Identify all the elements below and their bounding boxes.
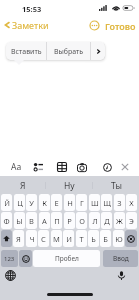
button[interactable]: Markup <box>98 158 116 176</box>
button[interactable]: А <box>39 212 50 229</box>
staticText: З <box>117 198 122 208</box>
button[interactable]: Б <box>100 230 111 247</box>
button[interactable]: Щ <box>101 194 112 211</box>
staticText: О <box>79 216 85 226</box>
staticText: Ц <box>17 198 23 208</box>
button[interactable]: У <box>26 194 37 211</box>
staticText: Ф <box>3 216 10 226</box>
staticText: Т <box>79 234 84 244</box>
button[interactable]: Г <box>76 194 87 211</box>
button[interactable]: Ц <box>14 194 25 211</box>
staticText: Aa <box>11 161 22 173</box>
button[interactable]: Д <box>101 212 112 229</box>
staticText: Р <box>67 216 72 226</box>
staticText: Ш <box>91 198 99 208</box>
button[interactable]: Ы <box>14 212 25 229</box>
button[interactable]: И <box>63 230 74 247</box>
staticText: 15:53 <box>22 4 42 14</box>
button[interactable]: Ю <box>113 230 124 247</box>
button[interactable]: Э <box>126 212 137 229</box>
button[interactable]: С <box>38 230 49 247</box>
button[interactable]: Ш <box>89 194 100 211</box>
staticText: Д <box>104 216 110 226</box>
staticText: Ну <box>64 180 75 192</box>
staticText: Б <box>103 234 108 244</box>
button[interactable]: Готово <box>105 20 136 32</box>
staticText: Ввод <box>113 254 129 263</box>
button[interactable]: Е <box>51 194 62 211</box>
button[interactable]: З <box>114 194 125 211</box>
staticText: Е <box>54 198 59 208</box>
button[interactable]: Numbers <box>1 250 18 267</box>
button[interactable]: Backspace <box>125 230 137 247</box>
button[interactable]: М <box>51 230 62 247</box>
button[interactable]: Й <box>1 194 12 211</box>
button[interactable]: П <box>51 212 62 229</box>
staticText: Н <box>67 198 73 208</box>
staticText: И <box>66 234 72 244</box>
staticText: Ж <box>116 216 123 226</box>
button[interactable]: Camera <box>73 158 91 176</box>
button[interactable]: Ты <box>93 176 139 194</box>
staticText: Я <box>16 234 21 244</box>
staticText: Ты <box>111 180 122 192</box>
button[interactable]: Checklist <box>29 158 47 176</box>
button[interactable]: Т <box>76 230 87 247</box>
staticText: Ч <box>29 234 35 244</box>
staticText: Пробел <box>55 254 79 263</box>
button[interactable]: Х <box>126 194 137 211</box>
button[interactable]: Р <box>64 212 75 229</box>
button[interactable]: О <box>76 212 87 229</box>
staticText: Х <box>129 198 134 208</box>
button[interactable]: Н <box>64 194 75 211</box>
staticText: Й <box>4 198 10 208</box>
staticText: Ы <box>16 216 23 226</box>
button[interactable]: Close keyboard <box>116 158 134 176</box>
staticText: П <box>54 216 60 226</box>
button[interactable]: Выбрать <box>47 42 90 60</box>
button[interactable]: К <box>39 194 50 211</box>
button[interactable]: Enter <box>103 250 138 267</box>
button[interactable]: Ж <box>114 212 125 229</box>
button[interactable]: More <box>89 20 100 31</box>
button[interactable]: Dictation <box>116 270 127 281</box>
staticText: К <box>42 198 47 208</box>
button[interactable]: Text format <box>7 158 25 176</box>
button[interactable]: Пробел <box>33 250 100 267</box>
button[interactable]: Change language <box>5 270 16 281</box>
staticText: Г <box>80 198 84 208</box>
button[interactable]: Emoji <box>19 250 32 267</box>
staticText: Вставить <box>11 47 42 57</box>
staticText: 123 <box>4 255 15 263</box>
staticText: Щ <box>103 198 111 208</box>
button[interactable]: Ч <box>26 230 37 247</box>
staticText: У <box>29 198 34 208</box>
staticText: Я <box>20 180 26 192</box>
button[interactable]: Вставить <box>6 42 46 60</box>
button[interactable]: Ь <box>88 230 99 247</box>
button[interactable]: В <box>26 212 37 229</box>
staticText: Заметки <box>12 19 49 31</box>
staticText: Выбрать <box>54 47 84 57</box>
button[interactable]: Shift <box>1 230 12 247</box>
staticText: С <box>41 234 46 244</box>
button[interactable]: Table <box>53 158 71 176</box>
staticText: Ь <box>91 234 96 244</box>
staticText: В <box>29 216 34 226</box>
button[interactable]: Я <box>13 230 24 247</box>
staticText: А <box>42 216 47 226</box>
staticText: Э <box>129 216 134 226</box>
button[interactable]: More actions <box>91 42 105 60</box>
button[interactable]: Я <box>0 176 45 194</box>
staticText: Ю <box>115 234 123 244</box>
button[interactable]: Заметки <box>1 16 48 34</box>
button[interactable]: Ф <box>1 212 12 229</box>
staticText: Л <box>92 216 98 226</box>
staticText: М <box>53 234 60 244</box>
button[interactable]: Ну <box>46 176 92 194</box>
button[interactable]: Л <box>89 212 100 229</box>
